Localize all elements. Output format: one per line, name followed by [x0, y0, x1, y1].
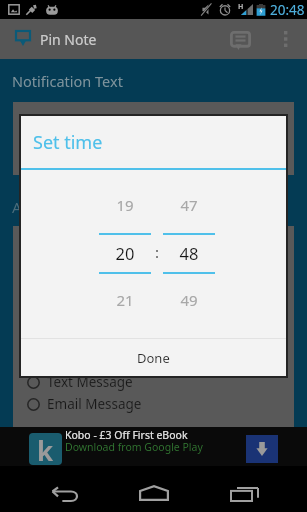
button[interactable]: Kobo	[29, 433, 62, 465]
staticText: H	[238, 2, 244, 12]
staticText: Set time	[33, 130, 103, 155]
button[interactable]: 47	[163, 195, 215, 215]
staticText: Done	[137, 349, 170, 367]
staticText: k	[37, 433, 54, 465]
button[interactable]: Download	[246, 435, 278, 463]
staticText: Text Message	[47, 373, 133, 391]
staticText: 20	[99, 242, 151, 264]
staticText: 48	[163, 242, 215, 264]
button[interactable]: Pin Note	[16, 19, 307, 59]
button[interactable]: More options	[272, 19, 298, 59]
button[interactable]: 19	[99, 195, 151, 215]
staticText: 19	[99, 195, 151, 215]
staticText: Pin Note	[40, 30, 97, 49]
button[interactable]: 20	[99, 242, 151, 264]
staticText: :	[151, 242, 163, 262]
button[interactable]: Back	[40, 466, 88, 512]
staticText: Kobo - £3 Off First eBook	[65, 428, 188, 442]
button[interactable]: Home	[130, 466, 178, 512]
button[interactable]: 49	[163, 290, 215, 310]
staticText: 49	[163, 290, 215, 310]
button[interactable]: Recent apps	[221, 466, 269, 512]
button[interactable]: 48	[163, 242, 215, 264]
staticText: 21	[99, 290, 151, 310]
staticText: 20:48	[270, 1, 305, 19]
staticText: A	[12, 197, 22, 217]
staticText: Download from Google Play	[65, 440, 203, 454]
button[interactable]: Email Message	[27, 393, 142, 415]
button[interactable]: 21	[99, 290, 151, 310]
staticText: Email Message	[47, 395, 142, 413]
button[interactable]: Done	[21, 339, 286, 376]
staticText: Notification Text	[12, 71, 123, 91]
button[interactable]: Text Message	[27, 371, 133, 393]
button[interactable]: Notifications	[222, 19, 259, 59]
staticText: 47	[163, 195, 215, 215]
